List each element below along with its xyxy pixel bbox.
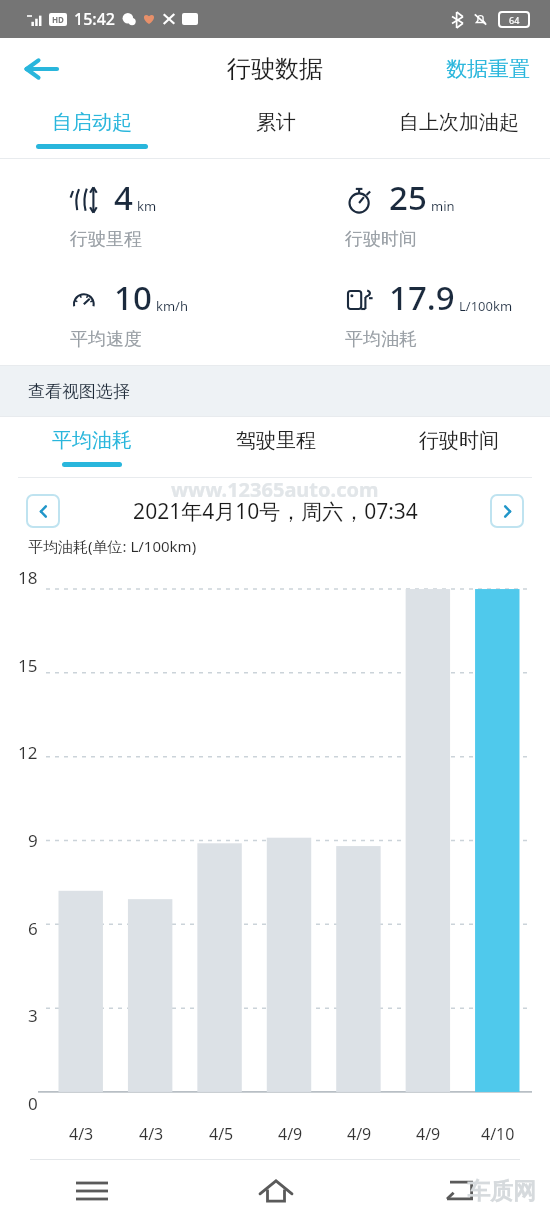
staticText: 自启动起 (52, 110, 132, 135)
button[interactable]: Previous (26, 494, 60, 528)
staticText: www.12365auto.com (171, 476, 379, 503)
staticText: 累计 (256, 110, 296, 135)
button[interactable]: Next (490, 494, 524, 528)
staticText: 行驶里程 (70, 228, 142, 251)
staticText: km (137, 197, 157, 215)
button[interactable]: 行驶时间 (367, 417, 550, 477)
button[interactable]: 自上次加油起 (367, 100, 550, 158)
button[interactable]: Back (12, 40, 70, 98)
button[interactable]: 10 (0, 275, 275, 351)
staticText: 2021年4月10号，周六，07:34 (133, 497, 418, 526)
staticText: 行驶时间 (419, 428, 499, 453)
button[interactable]: 17.9 (275, 275, 550, 351)
button[interactable]: Recents (0, 1160, 184, 1222)
staticText: 4/5 (209, 1123, 234, 1145)
staticText: L/100km (459, 297, 513, 315)
staticText: 4/3 (69, 1123, 94, 1145)
staticText: 行驶数据 (227, 54, 323, 84)
staticText: 17.9 (389, 275, 455, 320)
staticText: 行驶时间 (345, 228, 417, 251)
staticText: 车质网 (467, 1177, 536, 1206)
button[interactable]: 累计 (184, 100, 367, 158)
staticText: 4/9 (278, 1123, 303, 1145)
staticText: 64 (509, 14, 520, 26)
staticText: 平均油耗 (52, 428, 132, 453)
staticText: 25 (389, 175, 427, 220)
staticText: 15:42 (74, 8, 115, 30)
button[interactable]: 平均油耗 (0, 417, 184, 477)
button[interactable]: Home (184, 1160, 367, 1222)
staticText: 3 (28, 1004, 38, 1027)
staticText: 12 (18, 741, 38, 764)
staticText: HD (52, 14, 64, 25)
staticText: 4 (114, 175, 133, 220)
staticText: 平均油耗 (345, 328, 417, 351)
staticText: 数据重置 (446, 56, 530, 82)
staticText: 9 (28, 829, 38, 852)
staticText: 4/9 (347, 1123, 372, 1145)
button[interactable]: Back (367, 1160, 550, 1222)
button[interactable]: 数据重置 (426, 42, 550, 96)
button[interactable]: 驾驶里程 (184, 417, 367, 477)
staticText: 10 (114, 275, 152, 320)
staticText: 驾驶里程 (236, 428, 316, 453)
staticText: 平均速度 (70, 328, 142, 351)
staticText: min (431, 197, 455, 215)
staticText: 4/3 (139, 1123, 164, 1145)
staticText: km/h (156, 297, 188, 315)
staticText: 平均油耗(单位: L/100km) (28, 536, 197, 556)
button[interactable]: 4 (0, 175, 275, 251)
staticText: 4/10 (481, 1123, 515, 1145)
staticText: 自上次加油起 (399, 110, 519, 135)
button[interactable]: 25 (275, 175, 550, 251)
button[interactable]: 自启动起 (0, 100, 184, 158)
staticText: 0 (28, 1092, 38, 1115)
staticText: 6 (28, 917, 38, 940)
staticText: 查看视图选择 (28, 381, 130, 402)
staticText: 15 (18, 654, 38, 677)
staticText: 18 (18, 566, 38, 589)
staticText: 4/9 (416, 1123, 441, 1145)
